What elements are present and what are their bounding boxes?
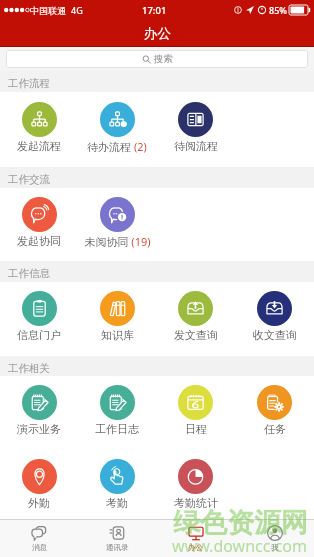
button[interactable]: 发起流程 (0, 102, 78, 153)
button[interactable]: 待办流程 (2) (78, 102, 156, 154)
staticText: 知识库 (101, 328, 134, 342)
staticText: 考勤统计 (174, 496, 218, 510)
staticText: 办公 (144, 25, 171, 42)
staticText: 工作日志 (95, 422, 139, 436)
button[interactable]: 演示业务 (0, 385, 78, 436)
staticText: 日程 (185, 422, 207, 436)
staticText: 我 (271, 543, 279, 552)
button[interactable]: 任务 (235, 385, 314, 436)
button[interactable]: 知识库 (78, 291, 156, 342)
button[interactable]: 日程 (156, 385, 235, 436)
staticText: 搜索 (154, 53, 173, 65)
button[interactable]: 未阅协同 (19) (78, 197, 156, 249)
button[interactable]: 我 (235, 520, 314, 557)
staticText: 待办流程 (2) (87, 139, 147, 154)
staticText: 考勤 (106, 496, 128, 510)
staticText: 17:01 (142, 4, 167, 17)
button[interactable]: 信息门户 (0, 291, 78, 342)
button[interactable]: 收文查询 (235, 291, 314, 342)
staticText: 待阅流程 (174, 139, 218, 153)
staticText: 中国联通 (30, 5, 66, 16)
staticText: 工作流程 (8, 77, 50, 90)
button[interactable]: 工作日志 (78, 385, 156, 436)
button[interactable]: 消息 (0, 520, 78, 557)
staticText: www.downcc.com (172, 535, 308, 557)
button[interactable]: 通讯录 (78, 520, 156, 557)
staticText: 信息门户 (17, 328, 61, 342)
staticText: 发起流程 (17, 139, 61, 153)
staticText: 工作信息 (8, 267, 50, 280)
staticText: 收文查询 (253, 328, 297, 342)
button[interactable]: 待阅流程 (156, 102, 235, 153)
staticText: 任务 (264, 422, 286, 436)
staticText: 4G (71, 4, 83, 16)
button[interactable]: 考勤 (78, 459, 156, 510)
button[interactable]: 发起协同 (0, 197, 78, 248)
button[interactable]: 外勤 (0, 459, 78, 510)
staticText: 绿色资源网 (173, 506, 308, 540)
staticText: 消息 (32, 543, 47, 552)
staticText: 外勤 (28, 496, 50, 510)
button[interactable]: 考勤统计 (156, 459, 235, 510)
button[interactable]: 办公 (156, 520, 235, 557)
staticText: 通讯录 (106, 543, 129, 552)
staticText: 85% (269, 4, 287, 16)
staticText: 工作相关 (8, 362, 50, 375)
staticText: 办公 (188, 543, 203, 552)
staticText: 演示业务 (17, 422, 61, 436)
button[interactable]: 搜索 (6, 50, 308, 68)
staticText: 发起协同 (17, 234, 61, 248)
staticText: 未阅协同 (19) (84, 234, 151, 249)
button[interactable]: 发文查询 (156, 291, 235, 342)
staticText: 发文查询 (174, 328, 218, 342)
staticText: 工作交流 (8, 173, 50, 186)
